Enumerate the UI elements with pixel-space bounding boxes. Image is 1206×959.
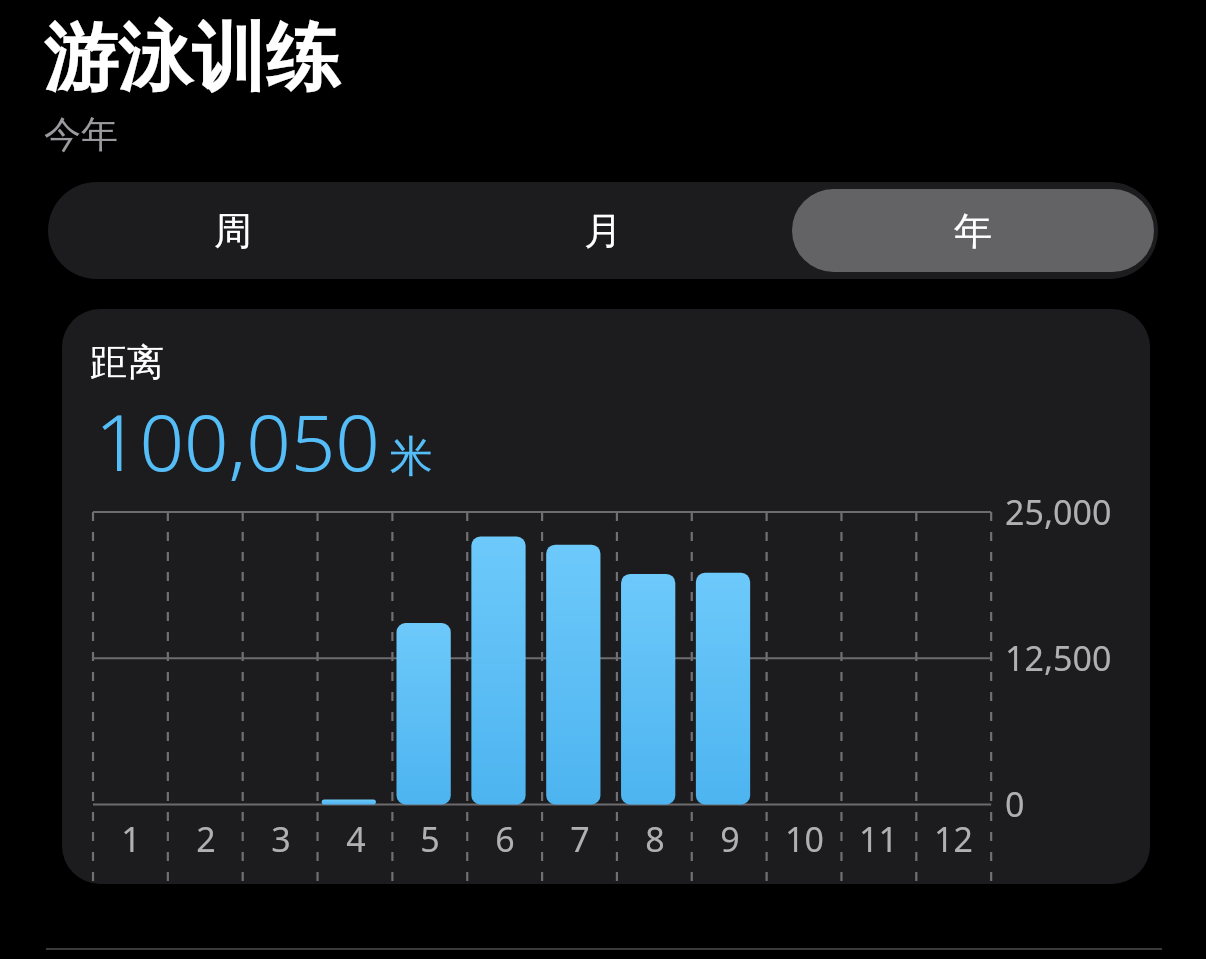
staticText: 游泳训练 <box>44 12 340 105</box>
staticText: 12 <box>934 816 973 862</box>
staticText: 月 <box>584 207 622 255</box>
staticText: 今年 <box>44 111 118 158</box>
staticText: 2 <box>196 816 216 862</box>
staticText: 9 <box>720 816 740 862</box>
staticText: 100,050 <box>95 388 380 494</box>
button[interactable]: 年 <box>792 189 1154 272</box>
staticText: 距离 <box>90 339 164 386</box>
staticText: 1 <box>121 816 141 862</box>
staticText: 3 <box>271 816 291 862</box>
staticText: 5 <box>420 816 440 862</box>
staticText: 6 <box>495 816 515 862</box>
staticText: 8 <box>645 816 665 862</box>
button[interactable]: 月 <box>422 189 784 272</box>
staticText: 米 <box>390 430 433 484</box>
button[interactable]: 周 <box>52 189 414 272</box>
staticText: 12,500 <box>1005 635 1112 681</box>
staticText: 年 <box>954 207 992 255</box>
staticText: 25,000 <box>1005 489 1112 535</box>
staticText: 7 <box>570 816 590 862</box>
staticText: 0 <box>1005 781 1025 827</box>
staticText: 11 <box>859 816 898 862</box>
staticText: 10 <box>785 816 824 862</box>
staticText: 周 <box>214 207 252 255</box>
staticText: 4 <box>346 816 366 862</box>
button[interactable]: 距离 <box>62 309 1150 884</box>
